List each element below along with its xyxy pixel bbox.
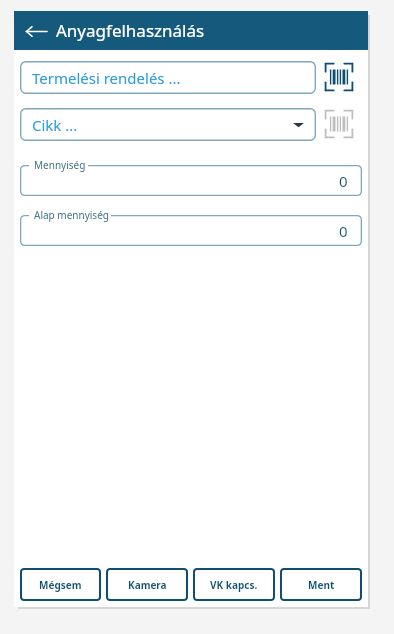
button[interactable]: 0 [20,215,362,246]
button[interactable]: Scan barcode [321,106,357,142]
staticText: VK kapcs. [210,578,258,592]
staticText: Mégsem [39,578,82,592]
button[interactable]: 0 [20,165,362,196]
button[interactable]: Mégsem [20,568,101,601]
staticText: Alap mennyiség [34,208,109,222]
button[interactable]: Termelési rendelés ... [20,61,316,94]
staticText: Kamera [128,578,167,592]
staticText: Ment [308,578,335,592]
staticText: Termelési rendelés ... [32,68,181,88]
staticText: Mennyiség [34,158,86,172]
button[interactable]: Ment [280,568,362,601]
button[interactable]: VK kapcs. [193,568,275,601]
staticText: Cikk ... [32,115,78,135]
button[interactable]: Scan barcode [321,59,357,95]
staticText: 0 [339,221,348,241]
staticText: Anyagfelhasználás [56,19,205,42]
button[interactable]: Cikk ... [20,108,316,141]
button[interactable]: Kamera [106,568,188,601]
staticText: 0 [339,171,348,191]
button[interactable]: Back [19,14,53,48]
